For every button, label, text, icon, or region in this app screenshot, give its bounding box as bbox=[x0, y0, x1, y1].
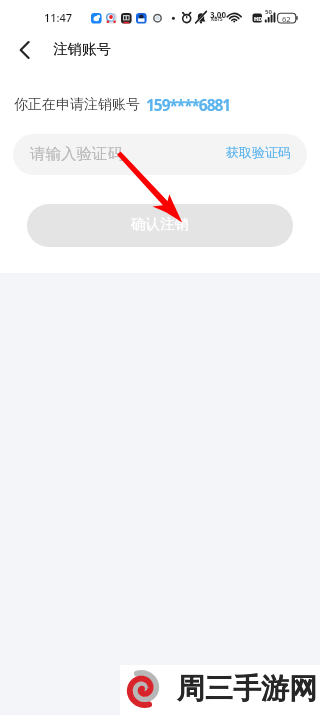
staticText: 3.00 bbox=[210, 9, 226, 20]
staticText: KB/S bbox=[211, 16, 223, 23]
staticText: 注销账号 bbox=[53, 40, 111, 58]
staticText: 62 bbox=[282, 14, 291, 24]
staticText: 11:47 bbox=[44, 10, 73, 25]
staticText: 50 bbox=[265, 8, 272, 16]
button[interactable]: 获取验证码 bbox=[214, 141, 307, 169]
button[interactable]: 请输入验证码 bbox=[13, 134, 307, 175]
staticText: 159****6881 bbox=[146, 94, 231, 115]
staticText: 注销账号 bbox=[53, 40, 111, 58]
staticText: HD bbox=[254, 15, 263, 22]
staticText: 获取验证码 bbox=[226, 144, 291, 160]
staticText: 确认注销 bbox=[131, 215, 189, 233]
staticText: 你正在申请注销账号 bbox=[14, 96, 140, 114]
staticText: 周三手游网 bbox=[177, 671, 317, 706]
staticText: 请输入验证码 bbox=[30, 144, 123, 164]
staticText: 周三手游网 bbox=[177, 671, 317, 706]
button[interactable]: Back bbox=[7, 32, 43, 68]
button[interactable]: 确认注销 bbox=[27, 204, 293, 247]
